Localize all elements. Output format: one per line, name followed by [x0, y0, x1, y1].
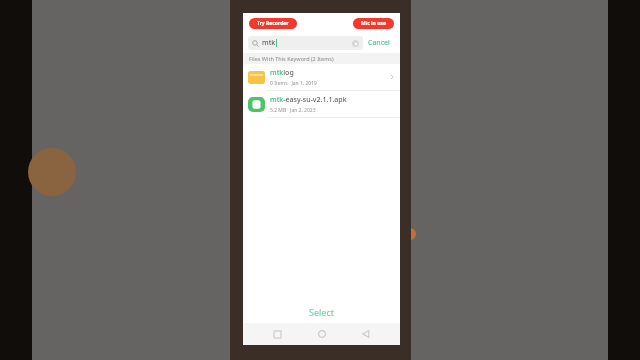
button[interactable]: Clear search [352, 40, 359, 47]
button[interactable]: Cancel [363, 35, 395, 51]
staticText: Files With This Keyword (2 Items) [249, 55, 334, 62]
staticText: mtk [262, 38, 276, 48]
staticText: Select [309, 306, 334, 318]
button[interactable]: Home [311, 323, 333, 345]
button[interactable]: Select [243, 301, 400, 323]
staticText: 0 Items Jan 1, 2019 [270, 80, 317, 87]
staticText: Cancel [368, 38, 390, 48]
staticText: Try Recorder [257, 20, 289, 27]
button[interactable]: Back [355, 323, 377, 345]
staticText: Mic in use [361, 20, 386, 27]
button[interactable]: Recents [266, 323, 288, 345]
button[interactable]: Mic in use [353, 18, 394, 29]
button[interactable]: Try Recorder [249, 18, 297, 29]
button[interactable]: mtk [248, 36, 363, 50]
staticText: mtklog [270, 68, 294, 78]
staticText: 5.2 MB Jan 2, 2023 [270, 107, 316, 114]
button[interactable]: mtk-easy-su-v2.1.1.apk [243, 91, 400, 117]
button[interactable]: mtklog [243, 64, 400, 90]
staticText: mtk-easy-su-v2.1.1.apk [270, 95, 347, 105]
